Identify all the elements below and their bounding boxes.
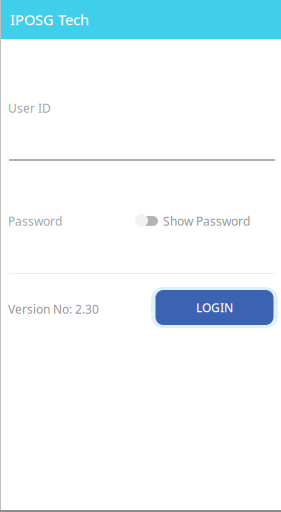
button[interactable]: User ID [0,0,281,72]
staticText: LOGIN [196,299,233,315]
staticText: Password [8,213,62,229]
staticText: IPOSG Tech [10,10,89,29]
button[interactable]: LOGIN [151,287,278,328]
staticText: Show Password [163,213,250,229]
button[interactable]: Password [0,0,125,22]
staticText: User ID [8,100,51,116]
button[interactable]: Show Password [0,0,151,22]
staticText: Version No: 2.30 [8,301,99,317]
